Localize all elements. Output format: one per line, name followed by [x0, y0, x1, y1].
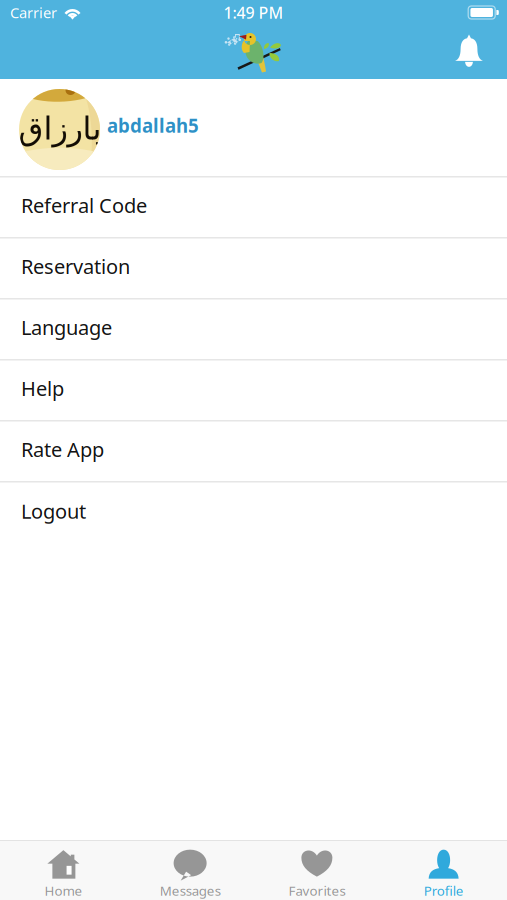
button[interactable]: Notifications [441, 35, 507, 68]
button[interactable]: Rate App [0, 421, 507, 482]
button[interactable]: Home [0, 839, 127, 900]
staticText: بارزاق [18, 110, 101, 147]
staticText: Carrier [10, 3, 57, 22]
staticText: Rate App [21, 436, 104, 463]
staticText: Reservation [21, 253, 130, 280]
staticText: Referral Code [21, 192, 147, 219]
button[interactable]: Help [0, 360, 507, 421]
button[interactable]: Logout [0, 482, 507, 543]
staticText: Help [21, 375, 64, 402]
staticText: Logout [21, 498, 86, 524]
button[interactable]: Reservation [0, 238, 507, 299]
staticText: Messages [160, 882, 221, 899]
button[interactable]: Language [0, 299, 507, 360]
button[interactable]: Favorites [253, 839, 380, 900]
button[interactable]: Referral Code [0, 177, 507, 238]
staticText: Home [44, 882, 82, 899]
button[interactable]: Profile [380, 839, 507, 900]
staticText: Profile [424, 882, 464, 899]
staticText: Language [21, 314, 112, 341]
staticText: 1:49 PM [223, 2, 283, 23]
button[interactable]: بارزاق [0, 79, 507, 177]
staticText: Favorites [288, 882, 345, 899]
staticText: abdallah5 [107, 113, 199, 138]
button[interactable]: Messages [127, 839, 254, 900]
